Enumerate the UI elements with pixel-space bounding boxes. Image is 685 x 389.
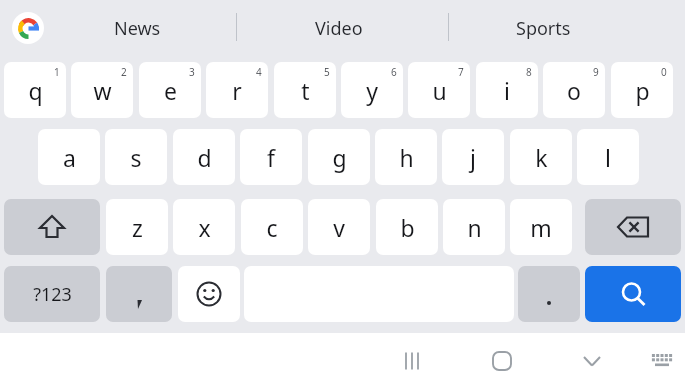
- button[interactable]: p: [611, 62, 673, 118]
- staticText: w: [93, 75, 112, 106]
- staticText: 9: [593, 65, 599, 79]
- button[interactable]: Search: [585, 266, 681, 322]
- button[interactable]: Google: [12, 12, 44, 44]
- button[interactable]: Video: [269, 4, 409, 52]
- button[interactable]: c: [241, 199, 303, 255]
- button[interactable]: o: [543, 62, 605, 118]
- staticText: 4: [256, 65, 262, 79]
- staticText: b: [400, 212, 415, 243]
- button[interactable]: v: [308, 199, 370, 255]
- staticText: v: [333, 212, 345, 243]
- staticText: p: [635, 75, 650, 106]
- staticText: 2: [121, 65, 127, 79]
- button[interactable]: Emoji: [178, 266, 240, 322]
- button[interactable]: l: [577, 129, 639, 185]
- staticText: y: [366, 75, 378, 106]
- button[interactable]: n: [443, 199, 505, 255]
- button[interactable]: d: [173, 129, 235, 185]
- button[interactable]: y: [341, 62, 403, 118]
- staticText: r: [232, 75, 242, 106]
- button[interactable]: Change keyboard: [638, 337, 685, 385]
- staticText: 1: [54, 65, 60, 79]
- button[interactable]: Home: [478, 337, 526, 385]
- button[interactable]: g: [308, 129, 370, 185]
- staticText: ?123: [33, 282, 72, 307]
- staticText: News: [114, 16, 161, 41]
- staticText: Video: [315, 16, 363, 41]
- staticText: 6: [391, 65, 397, 79]
- button[interactable]: z: [106, 199, 168, 255]
- button[interactable]: u: [408, 62, 470, 118]
- staticText: t: [301, 75, 310, 106]
- staticText: e: [164, 75, 177, 106]
- staticText: o: [567, 75, 581, 106]
- button[interactable]: News: [67, 4, 207, 52]
- staticText: f: [267, 142, 275, 173]
- staticText: j: [470, 142, 476, 173]
- button[interactable]: j: [442, 129, 504, 185]
- button[interactable]: q: [4, 62, 66, 118]
- button[interactable]: h: [375, 129, 437, 185]
- button[interactable]: b: [376, 199, 438, 255]
- button[interactable]: Comma: [106, 266, 172, 322]
- button[interactable]: i: [476, 62, 538, 118]
- staticText: q: [28, 75, 43, 106]
- staticText: 3: [189, 65, 195, 79]
- button[interactable]: ?123: [4, 266, 100, 322]
- button[interactable]: e: [139, 62, 201, 118]
- staticText: g: [332, 142, 347, 173]
- button[interactable]: Hide keyboard: [568, 337, 616, 385]
- button[interactable]: x: [173, 199, 235, 255]
- staticText: Sports: [516, 16, 571, 41]
- staticText: h: [399, 142, 414, 173]
- staticText: 8: [526, 65, 532, 79]
- button[interactable]: Backspace: [585, 199, 681, 255]
- button[interactable]: k: [510, 129, 572, 185]
- staticText: i: [504, 75, 510, 106]
- staticText: z: [132, 212, 143, 243]
- button[interactable]: Shift: [4, 199, 100, 255]
- button[interactable]: Recents: [388, 337, 436, 385]
- button[interactable]: t: [274, 62, 336, 118]
- button[interactable]: f: [240, 129, 302, 185]
- button[interactable]: s: [105, 129, 167, 185]
- staticText: a: [63, 142, 76, 173]
- staticText: s: [130, 142, 142, 173]
- staticText: x: [198, 212, 211, 243]
- button[interactable]: a: [38, 129, 100, 185]
- button[interactable]: m: [510, 199, 572, 255]
- staticText: n: [467, 212, 482, 243]
- button[interactable]: r: [206, 62, 268, 118]
- staticText: d: [197, 142, 212, 173]
- staticText: 5: [324, 65, 330, 79]
- staticText: m: [530, 212, 552, 243]
- button[interactable]: w: [71, 62, 133, 118]
- staticText: k: [535, 142, 548, 173]
- staticText: 7: [458, 65, 464, 79]
- staticText: c: [266, 212, 278, 243]
- staticText: 0: [661, 65, 667, 79]
- button[interactable]: Period: [518, 266, 580, 322]
- staticText: u: [432, 75, 447, 106]
- staticText: l: [605, 142, 611, 173]
- button[interactable]: Sports: [473, 4, 613, 52]
